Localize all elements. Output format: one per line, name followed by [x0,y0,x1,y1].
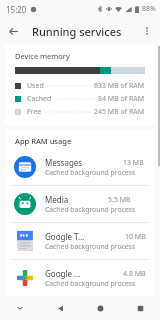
staticText: Free [27,107,42,117]
staticText: 88% [142,4,156,14]
staticText: 4.8 MB [123,269,146,279]
button[interactable]: Media [5,186,155,222]
button[interactable]: Recent apps [120,296,160,320]
button[interactable]: Google Play services [5,260,155,296]
button[interactable]: More options [134,18,160,44]
staticText: Running services [32,24,134,39]
staticText: 10 MB [125,232,146,242]
staticText: 84 MB of RAM [98,94,145,104]
staticText: App RAM usage [15,136,72,146]
staticText: Media [45,194,69,205]
button[interactable]: Home [80,296,120,320]
staticText: Cached background process [45,205,136,214]
staticText: Used [27,81,44,91]
staticText: 633 MB of RAM [94,81,145,91]
staticText: 5.5 MB [108,195,131,205]
staticText: 15:20 [6,4,27,15]
staticText: Cached background process [45,242,136,251]
button[interactable]: Messages [5,149,155,185]
button[interactable]: Google Text-to-spee.. [5,223,155,259]
staticText: Device memory [15,51,70,61]
staticText: Cached background process [45,279,136,288]
staticText: Cached [27,94,52,104]
button[interactable]: Back [0,18,26,44]
staticText: Messages [45,157,83,168]
button[interactable]: Hide keyboard [0,296,40,320]
staticText: 13 MB [123,158,144,168]
staticText: Cached background process [45,168,136,177]
staticText: Google Play services [45,268,84,279]
staticText: Google Text-to-spee.. [45,231,85,242]
button[interactable]: Back [40,296,80,320]
staticText: 245 MB of RAM [94,107,145,117]
